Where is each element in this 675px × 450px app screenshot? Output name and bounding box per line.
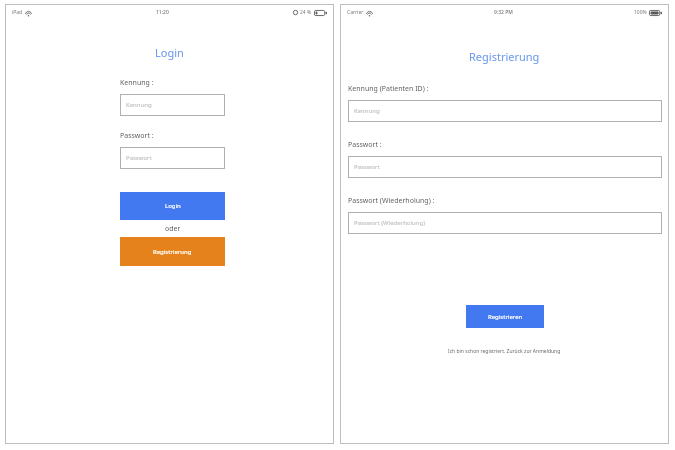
button[interactable]: Passwort (348, 156, 662, 178)
staticText: Carrier (347, 9, 364, 16)
button[interactable]: Passwort (Wiederholung) (348, 212, 662, 234)
button[interactable]: Login (120, 192, 225, 220)
button[interactable]: Registrierung (120, 237, 225, 266)
staticText: 9:32 PM (494, 9, 513, 16)
staticText: Passwort (126, 154, 152, 162)
staticText: Passwort (354, 163, 380, 171)
staticText: Passwort : (120, 131, 154, 141)
staticText: Passwort (Wiederholung) (354, 219, 425, 227)
staticText: Passwort (Wiederholung) : (348, 196, 435, 206)
staticText: Kennung (126, 101, 152, 109)
staticText: Ich bin schon registriert. Zurück zur An… (448, 348, 561, 355)
staticText: Registrierung (153, 248, 192, 256)
staticText: Registrieren (488, 313, 523, 321)
staticText: Login (165, 202, 181, 210)
button[interactable]: Passwort (120, 147, 225, 169)
button[interactable]: Ich bin schon registriert. Zurück zur An… (445, 346, 564, 357)
button[interactable]: Kennung (348, 100, 662, 122)
button[interactable]: Registrieren (466, 305, 544, 328)
staticText: iPad (12, 9, 23, 16)
button[interactable]: Kennung (120, 94, 225, 116)
staticText: 100% (634, 9, 647, 16)
staticText: 11:20 (156, 9, 169, 16)
staticText: Passwort : (348, 140, 382, 150)
staticText: Kennung (Patienten ID) : (348, 84, 429, 94)
staticText: Kennung : (120, 78, 154, 88)
staticText: Registrierung (469, 49, 540, 64)
staticText: oder (165, 224, 181, 234)
staticText: Login (155, 45, 184, 60)
staticText: 24 % (300, 9, 312, 16)
staticText: Kennung (354, 107, 380, 115)
